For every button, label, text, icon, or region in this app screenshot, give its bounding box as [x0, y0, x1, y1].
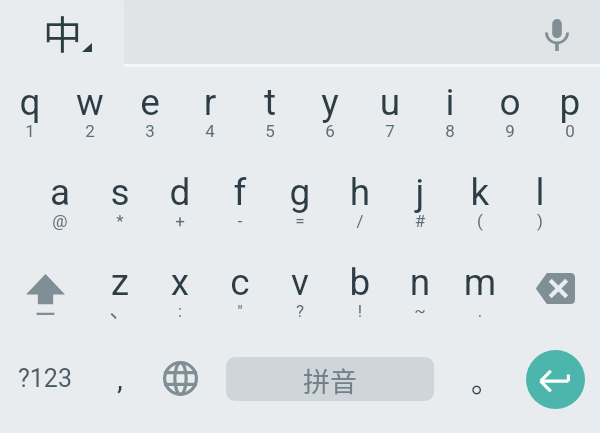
staticText: 0	[540, 121, 600, 141]
staticText: i	[420, 81, 480, 124]
staticText: ?123	[18, 364, 72, 393]
button[interactable]: f	[210, 156, 270, 246]
staticText: 1	[0, 121, 60, 141]
button[interactable]: s	[90, 156, 150, 246]
button[interactable]: g	[270, 156, 330, 246]
staticText: 。	[471, 359, 501, 401]
button[interactable]: Enter	[526, 350, 585, 409]
staticText: @	[30, 211, 90, 231]
staticText: e	[120, 81, 180, 124]
button[interactable]: e	[120, 66, 180, 156]
button[interactable]: 拼音	[226, 357, 434, 401]
staticText: g	[270, 171, 330, 214]
staticText: f	[210, 171, 270, 214]
button[interactable]: i	[420, 66, 480, 156]
staticText: s	[90, 171, 150, 214]
staticText: y	[300, 81, 360, 124]
staticText: t	[240, 81, 300, 124]
staticText: #	[390, 211, 450, 231]
staticText: ~	[390, 301, 450, 321]
button[interactable]: ?123	[0, 336, 90, 420]
staticText: ?	[270, 301, 330, 321]
staticText: j	[390, 171, 450, 214]
button[interactable]: t	[240, 66, 300, 156]
staticText: c	[210, 261, 270, 304]
staticText: .	[450, 301, 510, 321]
button[interactable]: v	[270, 246, 330, 336]
button[interactable]: Input language: Chinese	[0, 0, 124, 67]
button[interactable]: Voice input	[519, 0, 595, 64]
button[interactable]: j	[390, 156, 450, 246]
button[interactable]: y	[300, 66, 360, 156]
staticText: 9	[480, 121, 540, 141]
button[interactable]: l	[510, 156, 570, 246]
staticText: w	[60, 81, 120, 124]
staticText: 3	[120, 121, 180, 141]
staticText: v	[270, 261, 330, 304]
staticText: /	[330, 211, 390, 231]
button[interactable]: Backspace	[510, 246, 600, 336]
staticText: ,	[117, 361, 123, 396]
staticText: :	[150, 301, 210, 321]
staticText: (	[450, 211, 510, 231]
staticText: l	[510, 171, 570, 214]
staticText: 6	[300, 121, 360, 141]
staticText: n	[390, 261, 450, 304]
button[interactable]: z	[90, 246, 150, 336]
staticText: u	[360, 81, 420, 124]
staticText: z	[90, 261, 150, 304]
button[interactable]: q	[0, 66, 60, 156]
staticText: 2	[60, 121, 120, 141]
staticText: =	[270, 211, 330, 231]
staticText: !	[330, 301, 390, 321]
staticText: p	[540, 81, 600, 124]
button[interactable]: u	[360, 66, 420, 156]
staticText: d	[150, 171, 210, 214]
staticText: x	[150, 261, 210, 304]
staticText: -	[210, 211, 270, 231]
button[interactable]: m	[450, 246, 510, 336]
button[interactable]: c	[210, 246, 270, 336]
staticText: 、	[90, 293, 150, 323]
button[interactable]: Switch keyboard language	[150, 336, 210, 420]
staticText: r	[180, 81, 240, 124]
staticText: o	[480, 81, 540, 124]
button[interactable]: p	[540, 66, 600, 156]
staticText: 拼音	[303, 361, 357, 400]
staticText: q	[0, 81, 60, 124]
button[interactable]: n	[390, 246, 450, 336]
staticText: 中	[43, 4, 83, 60]
button[interactable]: h	[330, 156, 390, 246]
button[interactable]: a	[30, 156, 90, 246]
button[interactable]: ,	[90, 336, 150, 420]
button[interactable]: 。	[450, 336, 510, 420]
button[interactable]: w	[60, 66, 120, 156]
staticText: )	[510, 211, 570, 231]
button[interactable]: d	[150, 156, 210, 246]
button[interactable]: b	[330, 246, 390, 336]
staticText: h	[330, 171, 390, 214]
staticText: +	[150, 211, 210, 231]
button[interactable]: x	[150, 246, 210, 336]
staticText: 8	[420, 121, 480, 141]
staticText: 7	[360, 121, 420, 141]
button[interactable]: o	[480, 66, 540, 156]
staticText: k	[450, 171, 510, 214]
staticText: b	[330, 261, 390, 304]
staticText: m	[450, 261, 510, 304]
button[interactable]: k	[450, 156, 510, 246]
staticText: "	[210, 301, 270, 321]
staticText: 4	[180, 121, 240, 141]
staticText: 5	[240, 121, 300, 141]
staticText: *	[90, 211, 150, 231]
staticText: a	[30, 171, 90, 214]
button[interactable]: r	[180, 66, 240, 156]
button[interactable]: Shift	[0, 246, 90, 336]
